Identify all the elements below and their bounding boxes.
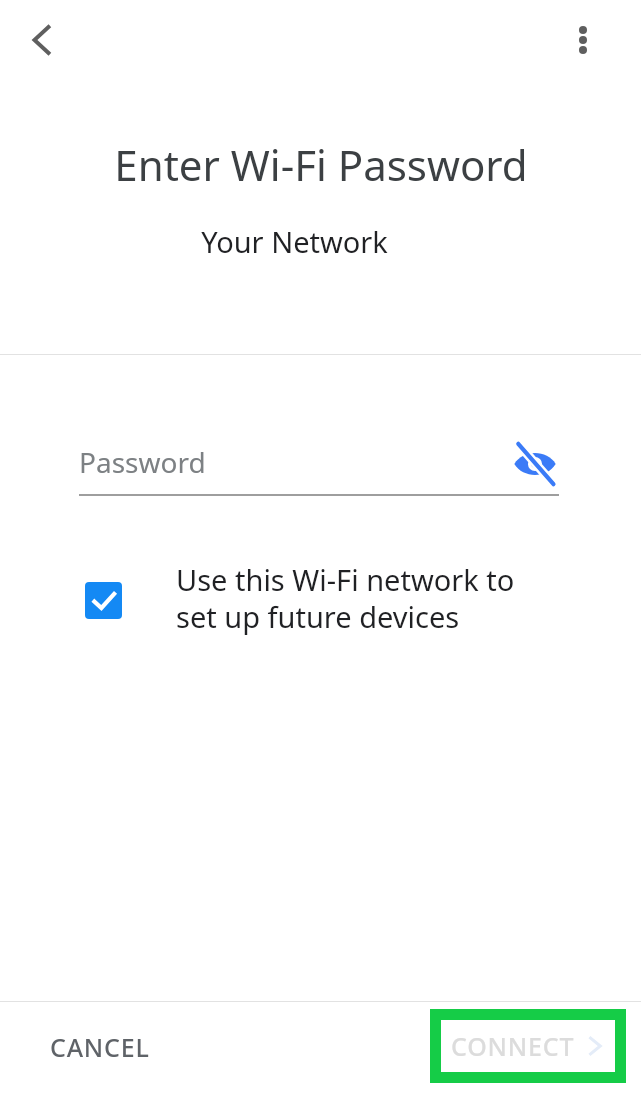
- staticText: CANCEL: [50, 1030, 150, 1064]
- button[interactable]: Use this Wi-Fi network to set up future …: [70, 560, 570, 637]
- button[interactable]: CANCEL: [20, 1012, 180, 1082]
- staticText: Your Network: [201, 222, 388, 261]
- staticText: Enter Wi-Fi Password: [114, 136, 528, 193]
- staticText: CONNECT: [451, 1029, 575, 1063]
- staticText: Password: [79, 443, 206, 481]
- button[interactable]: Password: [79, 438, 559, 496]
- button[interactable]: CONNECT: [441, 1020, 615, 1072]
- button[interactable]: Back: [10, 8, 74, 72]
- staticText: Use this Wi-Fi network to set up future …: [176, 560, 515, 637]
- button[interactable]: Show password: [503, 432, 567, 496]
- button[interactable]: More options: [551, 8, 615, 72]
